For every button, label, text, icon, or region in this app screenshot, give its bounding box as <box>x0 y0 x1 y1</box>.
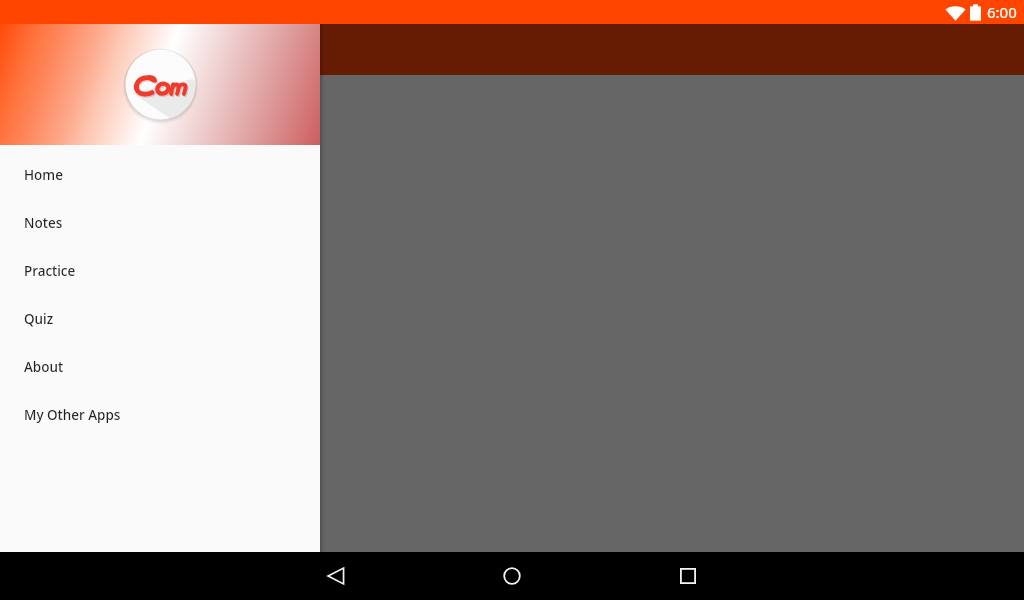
button[interactable]: Notes <box>0 199 320 247</box>
staticText: Practice <box>24 262 76 280</box>
staticText: About <box>24 358 64 376</box>
button[interactable]: About <box>0 343 320 391</box>
button[interactable]: Practice <box>0 247 320 295</box>
staticText: Home <box>24 166 63 184</box>
button[interactable]: Home <box>488 552 536 600</box>
staticText: 6:00 <box>987 2 1017 22</box>
button[interactable]: Back <box>312 552 360 600</box>
button[interactable]: Close navigation drawer <box>0 24 1024 552</box>
staticText: Notes <box>24 214 63 232</box>
button[interactable]: Quiz <box>0 295 320 343</box>
button[interactable]: My Other Apps <box>0 391 320 439</box>
button[interactable]: Home <box>0 151 320 199</box>
staticText: Quiz <box>24 310 54 328</box>
staticText: My Other Apps <box>24 406 121 424</box>
button[interactable]: Recent apps <box>664 552 712 600</box>
